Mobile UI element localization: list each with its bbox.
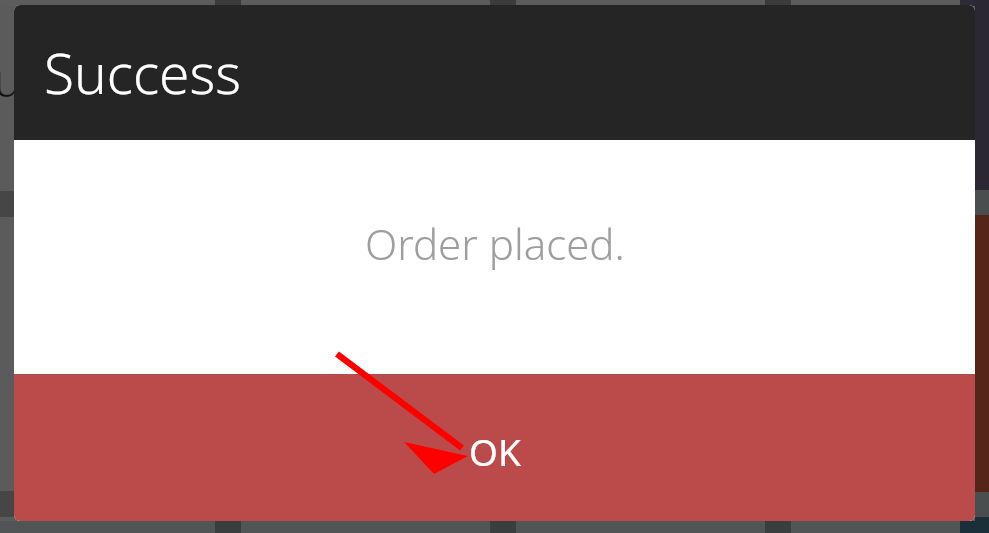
other: Annotation arrow pointing at OK [0,0,989,533]
staticText: Order placed. [365,215,625,272]
staticText: u [0,48,22,111]
staticText: OK [469,426,521,476]
staticText: Success [44,35,241,110]
button[interactable]: OK [14,374,975,521]
